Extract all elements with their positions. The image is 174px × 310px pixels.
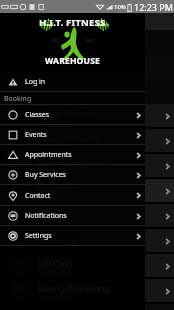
staticText: AM: [15, 244, 23, 251]
staticText: Junior Bootcamp: [38, 133, 102, 144]
staticText: 10%: [114, 3, 126, 11]
staticText: Log in: [25, 77, 46, 87]
staticText: Settings: [25, 231, 52, 241]
staticText: 6:00: [11, 158, 27, 169]
button[interactable]: 6:00: [0, 104, 174, 129]
staticText: Events: [25, 130, 47, 140]
staticText: Club MEMBER: [38, 144, 71, 151]
staticText: Club MEMBER: [38, 219, 71, 226]
staticText: Buy Services: [25, 170, 66, 180]
staticText: HIT Class: [38, 208, 73, 219]
button[interactable]: Log in: [0, 72, 145, 92]
staticText: 6:00: [11, 133, 27, 144]
staticText: AM: [15, 169, 23, 176]
staticText: Club MEMBER: [38, 244, 71, 251]
button[interactable]: 6:30: [0, 179, 174, 204]
button[interactable]: 7:00: [0, 204, 174, 229]
staticText: Club MEMBER: [38, 119, 71, 126]
staticText: Bootcamp: [38, 183, 78, 194]
staticText: Boxing/Kickboxing: [38, 283, 110, 294]
button[interactable]: Classes: [0, 105, 145, 125]
staticText: Bootcamp: [38, 233, 78, 244]
staticText: Contact: [25, 191, 51, 201]
staticText: Boxing/Kickboxing: [38, 158, 110, 169]
staticText: WAREHOUSE: [45, 55, 100, 67]
button[interactable]: Buy Services: [0, 165, 145, 185]
staticText: AM: [15, 219, 23, 226]
staticText: AM: [15, 144, 23, 151]
button[interactable]: 8:00: [0, 279, 174, 304]
button[interactable]: 7:00: [0, 229, 174, 254]
staticText: Club MEMBER: [38, 169, 71, 176]
button[interactable]: 6:00: [0, 129, 174, 154]
staticText: 7:00: [11, 208, 27, 219]
staticText: VIP Class: [38, 258, 73, 269]
button[interactable]: Contact: [0, 185, 145, 206]
staticText: Notifications: [25, 211, 67, 221]
button[interactable]: Appointments: [0, 145, 145, 165]
staticText: Appointments: [25, 150, 72, 160]
staticText: AM: [15, 119, 23, 126]
staticText: Senior Bootcamp: [38, 108, 104, 119]
staticText: AM: [15, 194, 23, 201]
staticText: H.I.T. FITNESS: [39, 16, 106, 29]
staticText: Booking: [4, 94, 32, 104]
staticText: 6:30: [11, 183, 27, 194]
button[interactable]: 6:00: [0, 154, 174, 179]
staticText: 7:00: [11, 233, 27, 244]
staticText: 2007: [85, 38, 95, 43]
button[interactable]: Settings: [0, 226, 145, 246]
staticText: 12:23 PM: [134, 1, 173, 13]
staticText: Club MEMBER: [38, 194, 71, 201]
staticText: Classes: [25, 110, 50, 120]
staticText: 6:00: [11, 108, 27, 119]
staticText: EST: [52, 38, 59, 43]
button[interactable]: 7:00: [0, 254, 174, 279]
button[interactable]: Events: [0, 125, 145, 145]
button[interactable]: Notifications: [0, 206, 145, 226]
